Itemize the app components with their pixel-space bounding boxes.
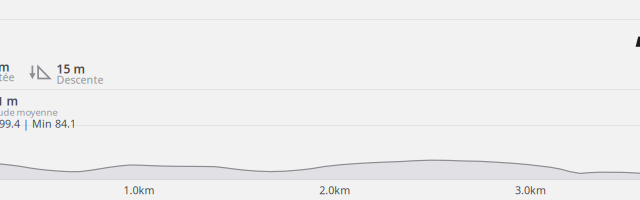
staticText: 1.0km <box>123 183 154 197</box>
staticText: 2.0km <box>319 183 350 197</box>
staticText: Descente <box>56 72 103 87</box>
staticText: 15 m <box>56 61 85 77</box>
staticText: 3.0km <box>515 183 546 197</box>
staticText: Montée <box>0 70 14 84</box>
staticText: 91 m <box>0 93 18 109</box>
staticText: Max 99.4 | Min 84.1 <box>0 116 76 131</box>
staticText: Altitude moyenne <box>0 106 57 118</box>
staticText: 24 m <box>0 59 10 75</box>
button[interactable]: 24 m <box>0 51 640 89</box>
